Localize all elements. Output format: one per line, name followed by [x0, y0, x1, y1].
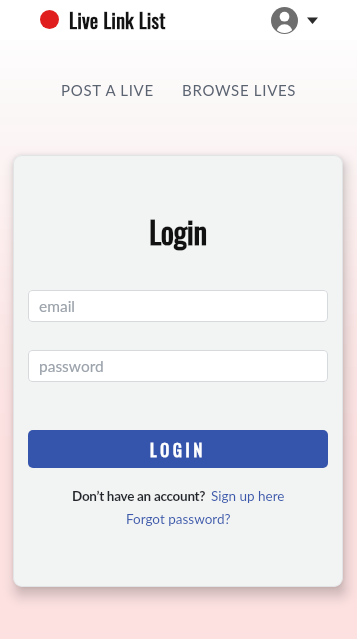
- staticText: LOGIN: [150, 437, 206, 461]
- button[interactable]: POST A LIVE: [61, 81, 154, 99]
- staticText: Forgot password?: [126, 511, 231, 527]
- staticText: Login: [149, 208, 207, 254]
- button[interactable]: [271, 7, 318, 34]
- button[interactable]: password: [28, 350, 328, 382]
- button[interactable]: BROWSE LIVES: [182, 81, 297, 99]
- button[interactable]: LOGIN: [28, 430, 328, 468]
- staticText: Sign up here: [211, 488, 285, 504]
- button[interactable]: Sign up here: [211, 488, 285, 504]
- staticText: email: [39, 297, 76, 316]
- staticText: Live Link List: [69, 5, 166, 35]
- button[interactable]: email: [28, 290, 328, 322]
- button[interactable]: Forgot password?: [126, 511, 231, 527]
- staticText: Don’t have an account?: [72, 488, 206, 504]
- staticText: POST A LIVE: [61, 81, 154, 99]
- staticText: password: [39, 357, 104, 376]
- staticText: BROWSE LIVES: [182, 81, 297, 99]
